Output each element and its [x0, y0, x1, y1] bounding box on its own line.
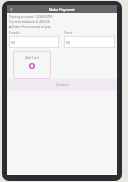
staticText: Make Payment: [49, 7, 75, 12]
staticText: 00: [11, 40, 15, 45]
staticText: Add Card: [25, 56, 39, 60]
button[interactable]: Continue: [7, 79, 117, 91]
staticText: Current balance: £ 489.56: [9, 19, 50, 24]
staticText: 00: [66, 40, 70, 45]
button[interactable]: Add Card: [13, 51, 51, 79]
staticText: Pounds: [9, 31, 20, 35]
button[interactable]: 00: [64, 36, 115, 48]
staticText: Enter the amount to pay: [12, 24, 51, 29]
button[interactable]: 00: [9, 36, 59, 48]
staticText: Pence: [64, 31, 73, 35]
button[interactable]: Back: [7, 5, 15, 13]
staticText: Paying account: 123456789: [9, 14, 53, 19]
staticText: Continue: [56, 83, 69, 87]
